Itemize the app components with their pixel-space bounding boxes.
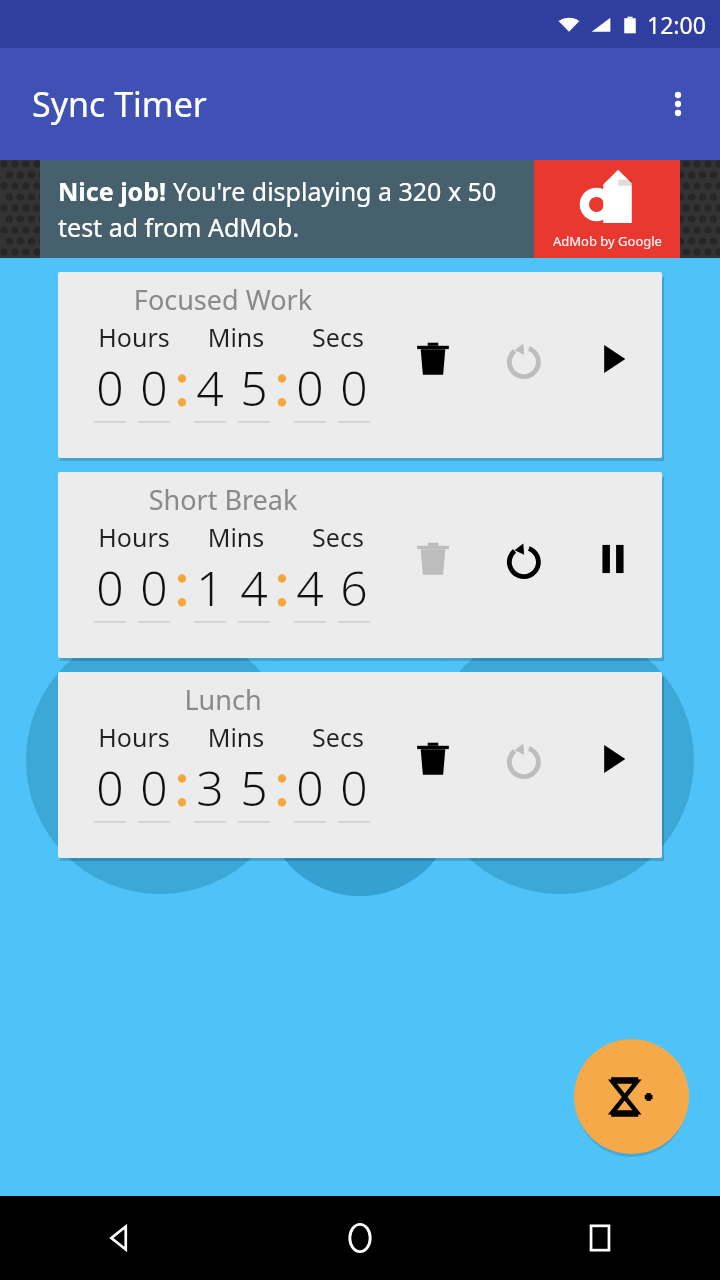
button[interactable]: Add timer: [574, 1039, 689, 1154]
staticText: 4: [188, 355, 232, 420]
button[interactable]: Pause: [584, 530, 642, 588]
button[interactable]: Reset: [494, 730, 552, 788]
button[interactable]: Delete: [404, 530, 462, 588]
staticText: Secs: [292, 720, 384, 754]
staticText: Hours: [88, 720, 180, 754]
staticText: 0: [132, 355, 176, 420]
staticText: Nice job!: [58, 174, 173, 208]
staticText: Hours: [88, 520, 180, 554]
button[interactable]: Start: [584, 730, 642, 788]
button[interactable]: Recents: [480, 1196, 720, 1280]
button[interactable]: AdMob by Google: [0, 160, 720, 258]
button[interactable]: Reset: [494, 330, 552, 388]
button[interactable]: Focused Work: [58, 272, 662, 458]
staticText: 6: [332, 555, 376, 620]
button[interactable]: Reset: [494, 530, 552, 588]
staticText: 1: [188, 555, 232, 620]
staticText: AdMob by Google: [553, 232, 662, 250]
staticText: Short Break: [58, 481, 388, 518]
staticText: Sync Timer: [32, 81, 207, 127]
staticText: 0: [88, 555, 132, 620]
staticText: 0: [288, 355, 332, 420]
staticText: Mins: [190, 720, 282, 754]
staticText: Lunch: [58, 681, 388, 718]
button[interactable]: Back: [0, 1196, 240, 1280]
staticText: 3: [188, 755, 232, 820]
staticText: 0: [88, 355, 132, 420]
staticText: 4: [232, 555, 276, 620]
button[interactable]: Start: [584, 330, 642, 388]
staticText: Mins: [190, 320, 282, 354]
button[interactable]: Home: [240, 1196, 480, 1280]
staticText: 4: [288, 555, 332, 620]
button[interactable]: Delete: [404, 730, 462, 788]
staticText: Focused Work: [58, 281, 388, 318]
staticText: 0: [288, 755, 332, 820]
staticText: Hours: [88, 320, 180, 354]
staticText: Mins: [190, 520, 282, 554]
staticText: 5: [232, 355, 276, 420]
staticText: 12:00: [647, 9, 706, 40]
staticText: 0: [88, 755, 132, 820]
staticText: Secs: [292, 520, 384, 554]
button[interactable]: Delete: [404, 330, 462, 388]
button[interactable]: Lunch: [58, 672, 662, 858]
staticText: Secs: [292, 320, 384, 354]
staticText: 0: [132, 755, 176, 820]
button[interactable]: More options: [646, 72, 710, 136]
staticText: 5: [232, 755, 276, 820]
staticText: 0: [132, 555, 176, 620]
button[interactable]: Short Break: [58, 472, 662, 658]
staticText: You're displaying a 320 x 50: [173, 174, 497, 208]
staticText: 0: [332, 355, 376, 420]
staticText: 0: [332, 755, 376, 820]
staticText: test ad from AdMob.: [58, 210, 300, 244]
